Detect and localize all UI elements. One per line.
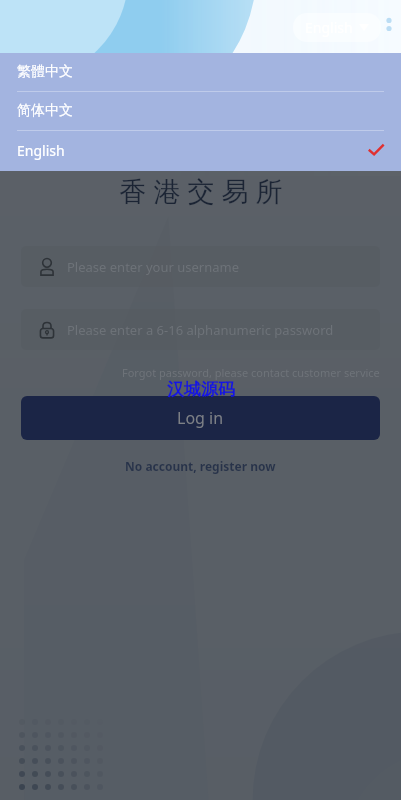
staticText: Please enter your username [67, 258, 239, 276]
button[interactable]: English [0, 131, 401, 169]
staticText: 繁體中文 [17, 63, 73, 81]
staticText: 香 港 交 易 所 [119, 172, 283, 209]
button[interactable]: 繁體中文 [0, 53, 401, 91]
staticText: Please enter a 6-16 alphanumeric passwor… [67, 321, 334, 339]
staticText: Log in [177, 407, 224, 429]
staticText: 汉城源码 [167, 379, 235, 400]
staticText: Forgot password, please contact customer… [122, 365, 380, 380]
staticText: No account, register now [125, 458, 276, 474]
button[interactable]: Please enter a 6-16 alphanumeric passwor… [21, 309, 380, 350]
button[interactable]: More options [381, 12, 397, 42]
staticText: English [17, 141, 65, 160]
button[interactable]: Please enter your username [21, 246, 380, 287]
button[interactable]: No account, register now [119, 452, 282, 480]
button[interactable]: Log in [21, 396, 380, 440]
button[interactable]: Forgot password, please contact customer… [122, 365, 380, 380]
button[interactable]: 简体中文 [0, 92, 401, 130]
staticText: 简体中文 [17, 102, 73, 120]
